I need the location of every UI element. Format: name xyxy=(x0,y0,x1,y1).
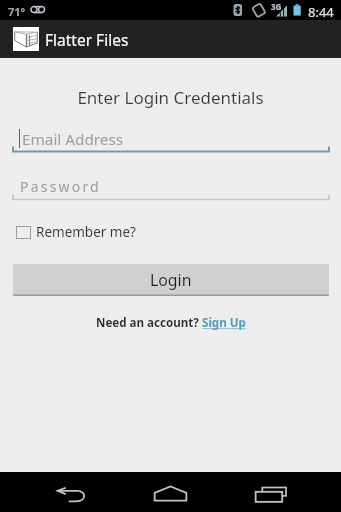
button[interactable]: Password xyxy=(12,175,330,203)
button[interactable]: Sign Up xyxy=(202,315,246,331)
staticText: Password xyxy=(20,177,101,196)
button[interactable]: Email Address xyxy=(12,127,330,155)
button[interactable]: Login xyxy=(13,264,329,296)
staticText: Email Address xyxy=(22,129,124,150)
staticText: Need an account? xyxy=(96,315,202,331)
button[interactable]: Back xyxy=(0,472,113,512)
staticText: 8:44 xyxy=(308,3,334,21)
button[interactable]: Home xyxy=(113,472,227,512)
staticText: Remember me? xyxy=(36,223,136,241)
staticText: Login xyxy=(150,269,192,291)
staticText: 71° xyxy=(8,4,26,19)
button[interactable]: Recent apps xyxy=(227,472,341,512)
staticText: Sign Up xyxy=(202,315,246,331)
staticText: Enter Login Credentials xyxy=(0,86,341,109)
staticText: 3G xyxy=(271,1,282,12)
staticText: Flatter Files xyxy=(45,29,129,50)
button[interactable]: Remember me? xyxy=(16,223,136,241)
